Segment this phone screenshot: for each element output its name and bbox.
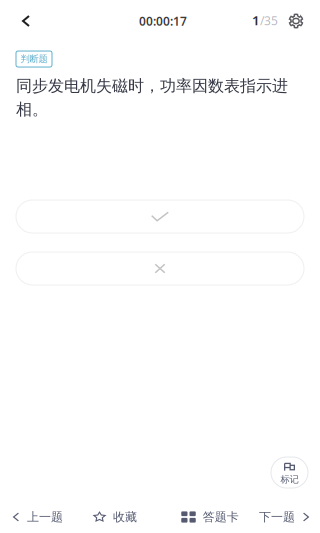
staticText: 收藏 xyxy=(113,510,137,524)
staticText: 00:00:17 xyxy=(139,13,187,29)
button[interactable]: 错误 xyxy=(16,252,304,285)
button[interactable]: 标记 xyxy=(271,457,308,488)
staticText: /35 xyxy=(260,12,278,28)
staticText: 1 xyxy=(252,11,260,29)
button[interactable]: 返回 xyxy=(5,1,47,41)
staticText: 同步发电机失磁时，功率因数表指示进相。 xyxy=(16,76,288,119)
staticText: 上一题 xyxy=(27,510,63,524)
staticText: 判断题 xyxy=(20,53,47,65)
button[interactable]: 收藏 xyxy=(80,500,150,533)
button[interactable]: 答题卡 xyxy=(171,500,249,533)
staticText: 下一题 xyxy=(259,510,295,524)
staticText: 答题卡 xyxy=(203,510,239,524)
button[interactable]: 正确 xyxy=(16,200,304,233)
staticText: 标记 xyxy=(280,474,298,485)
button[interactable]: 上一题 xyxy=(0,500,76,533)
button[interactable]: 设置 xyxy=(281,1,311,41)
button[interactable]: 下一题 xyxy=(248,500,320,533)
